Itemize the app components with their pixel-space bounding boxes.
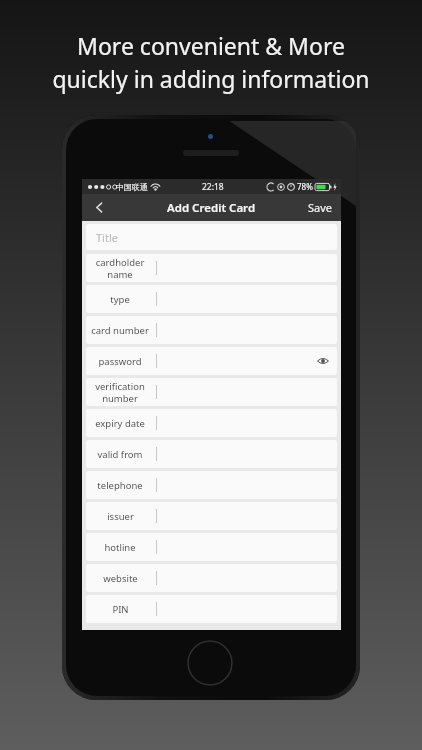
button[interactable]: valid from: [86, 440, 337, 468]
staticText: card number: [91, 324, 149, 337]
button[interactable]: Title: [86, 224, 337, 250]
staticText: PIN: [112, 603, 129, 616]
staticText: issuer: [107, 510, 134, 523]
staticText: expiry date: [95, 417, 145, 430]
button[interactable]: verification number: [86, 378, 337, 406]
button[interactable]: password: [86, 347, 337, 375]
staticText: verification number: [86, 380, 154, 404]
staticText: Save: [308, 200, 333, 215]
staticText: 22:18: [202, 181, 224, 193]
button[interactable]: issuer: [86, 502, 337, 530]
button[interactable]: Show password: [315, 353, 331, 369]
button[interactable]: telephone: [86, 471, 337, 499]
staticText: password: [98, 355, 142, 368]
button[interactable]: card number: [86, 316, 337, 344]
button[interactable]: Save: [300, 194, 341, 221]
staticText: cardholder name: [86, 256, 154, 280]
button[interactable]: expiry date: [86, 409, 337, 437]
staticText: telephone: [97, 479, 143, 492]
staticText: Title: [96, 230, 118, 245]
staticText: type: [110, 293, 130, 306]
staticText: 中国联通: [116, 182, 148, 192]
button[interactable]: Home: [187, 640, 233, 686]
staticText: Add Credit Card: [167, 200, 256, 216]
staticText: 78%: [297, 181, 313, 192]
button[interactable]: hotline: [86, 533, 337, 561]
staticText: hotline: [104, 541, 136, 554]
staticText: More convenient & More: [77, 30, 345, 61]
button[interactable]: Back: [82, 194, 116, 221]
staticText: quickly in adding information: [52, 63, 370, 94]
staticText: valid from: [97, 448, 143, 461]
button[interactable]: website: [86, 564, 337, 592]
button[interactable]: cardholder name: [86, 254, 337, 282]
staticText: website: [103, 572, 138, 585]
button[interactable]: PIN: [86, 595, 337, 623]
button[interactable]: type: [86, 285, 337, 313]
